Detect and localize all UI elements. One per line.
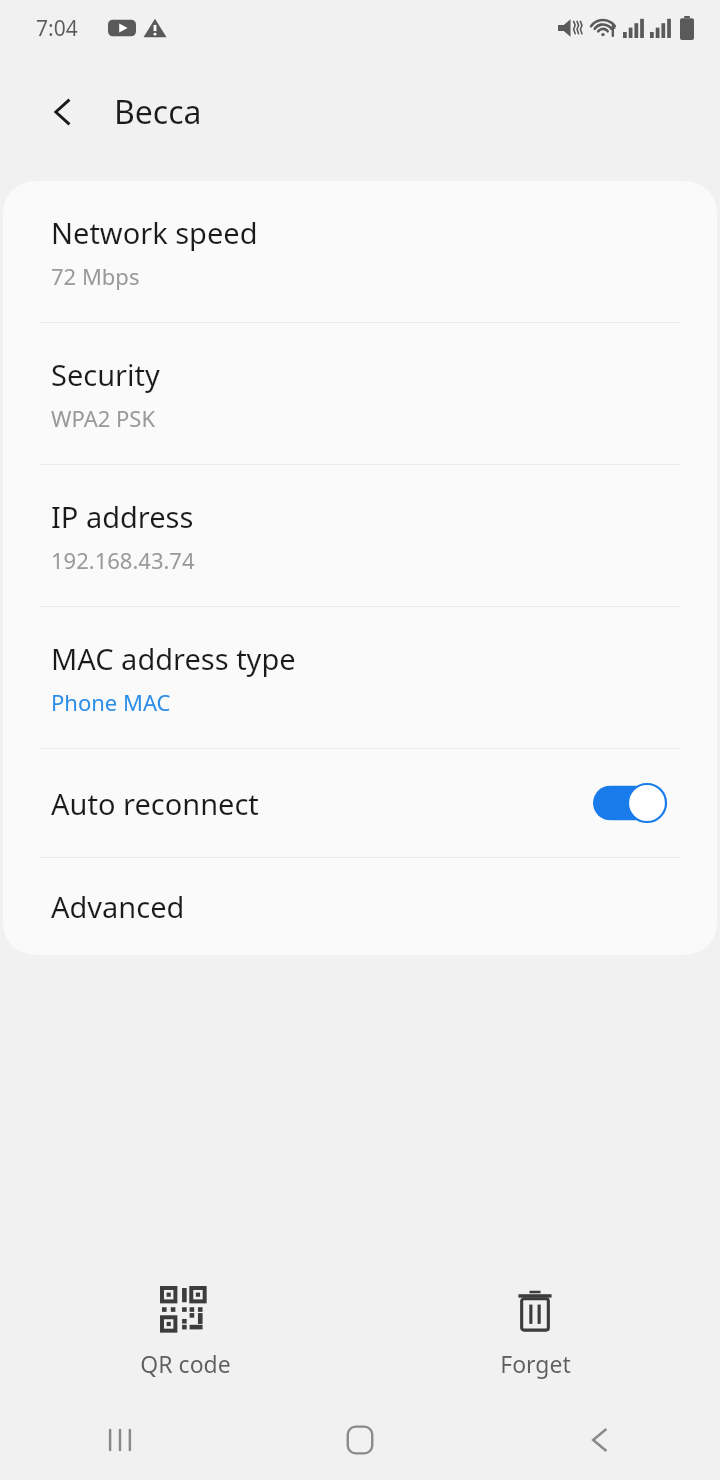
staticText: QR code (140, 1348, 231, 1379)
other: Forget (512, 1288, 558, 1334)
staticText: Phone MAC (51, 687, 171, 717)
staticText: IP address (51, 497, 194, 536)
button[interactable]: IP address (3, 465, 717, 606)
staticText: Advanced (51, 887, 185, 926)
button[interactable]: QR code (100, 1280, 270, 1387)
staticText: MAC address type (51, 639, 296, 678)
other: QR code (162, 1288, 208, 1334)
staticText: Security (51, 355, 160, 394)
button[interactable]: Back (34, 83, 92, 141)
button[interactable]: Home (240, 1400, 480, 1480)
staticText: 7:04 (36, 14, 78, 43)
button[interactable]: Recents (0, 1400, 240, 1480)
button[interactable]: Back (480, 1400, 720, 1480)
button[interactable]: Advanced (3, 858, 717, 955)
staticText: Auto reconnect (51, 784, 593, 823)
staticText: Forget (500, 1348, 571, 1379)
button[interactable]: Network speed (3, 181, 717, 322)
staticText: Network speed (51, 213, 258, 252)
button[interactable]: MAC address type (3, 607, 717, 748)
staticText: WPA2 PSK (51, 403, 156, 433)
button[interactable]: Forget (450, 1280, 620, 1387)
staticText: 72 Mbps (51, 261, 140, 291)
staticText: 192.168.43.74 (51, 545, 195, 575)
staticText: Becca (114, 90, 202, 134)
button[interactable]: Auto reconnect (3, 749, 717, 857)
button[interactable]: Security (3, 323, 717, 464)
